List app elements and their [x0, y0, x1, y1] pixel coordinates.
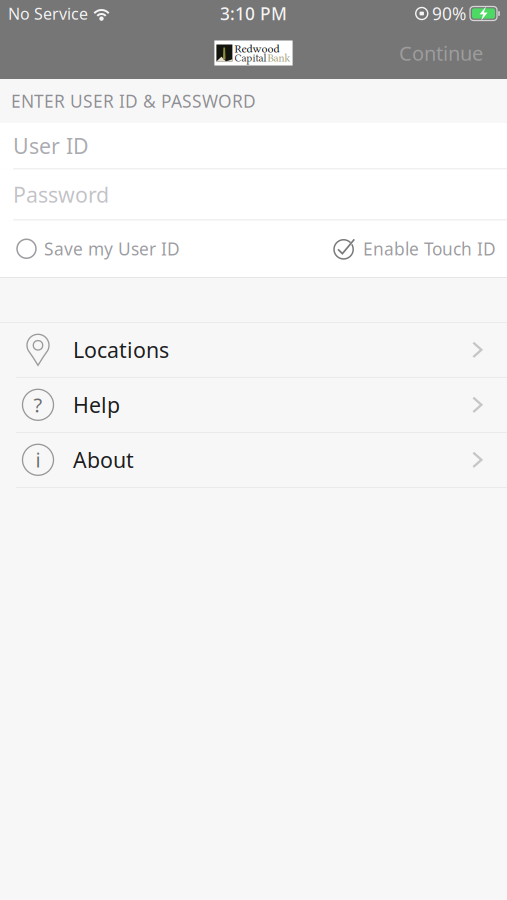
staticText: ?	[33, 391, 42, 418]
staticText: Locations	[73, 336, 169, 364]
staticText: No Service	[8, 3, 88, 24]
staticText: Continue	[399, 40, 483, 66]
staticText: Enable Touch ID	[363, 237, 496, 260]
staticText: i	[35, 446, 40, 473]
button[interactable]: i	[0, 433, 507, 488]
staticText: Password	[13, 180, 109, 209]
staticText: 3:10 PM	[220, 2, 287, 25]
button[interactable]: Locations	[0, 323, 507, 378]
staticText: Save my User ID	[44, 237, 180, 260]
button[interactable]: Save my User ID	[17, 227, 180, 270]
staticText: ENTER USER ID & PASSWORD	[11, 89, 256, 112]
staticText: Help	[73, 391, 120, 419]
staticText: Capital	[234, 52, 266, 64]
staticText: User ID	[13, 132, 89, 160]
staticText: About	[73, 446, 134, 474]
button[interactable]: Enable Touch ID	[333, 227, 496, 271]
staticText: 90%	[432, 2, 466, 25]
staticText: Redwood	[234, 42, 279, 55]
staticText: Bank	[268, 52, 291, 64]
button[interactable]: Continue	[399, 27, 507, 79]
button[interactable]: ?	[0, 378, 507, 433]
